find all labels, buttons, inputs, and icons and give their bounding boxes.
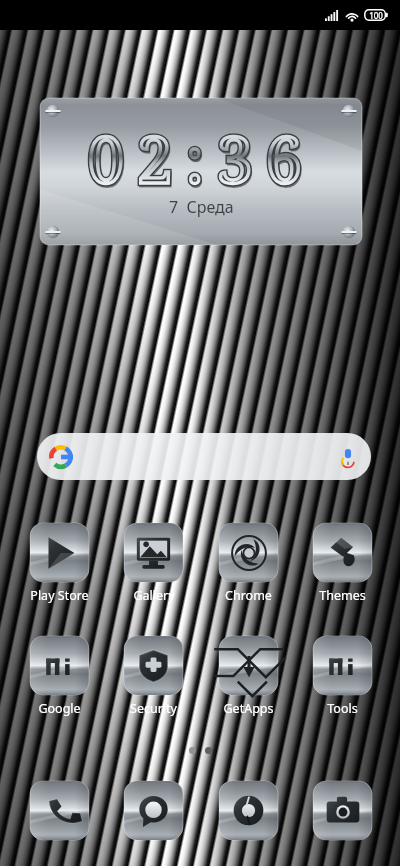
button[interactable]: Search: [37, 433, 371, 480]
button[interactable]: Messages: [124, 781, 183, 840]
staticText: 02:36: [88, 115, 315, 202]
staticText: Google: [38, 700, 81, 717]
staticText: 7 Среда: [169, 196, 234, 218]
button[interactable]: Play Store: [14, 523, 105, 604]
button[interactable]: Gallery: [108, 523, 199, 604]
staticText: Chrome: [225, 587, 272, 604]
button[interactable]: Tools: [297, 636, 388, 717]
staticText: 02:36: [89, 117, 316, 204]
button[interactable]: Chrome: [203, 523, 294, 604]
button[interactable]: Themes: [297, 523, 388, 604]
button[interactable]: Google: [14, 636, 105, 717]
staticText: Play Store: [30, 587, 89, 604]
staticText: 02:36: [88, 115, 315, 202]
staticText: 100: [369, 10, 383, 21]
staticText: GetApps: [223, 700, 274, 717]
staticText: Gallery: [133, 587, 175, 604]
button[interactable]: Browser: [219, 781, 278, 840]
button[interactable]: Camera: [313, 781, 372, 840]
staticText: Tools: [327, 700, 358, 717]
button[interactable]: Phone: [30, 781, 89, 840]
button[interactable]: 02:36: [40, 98, 362, 245]
staticText: Themes: [319, 587, 366, 604]
button[interactable]: GetApps: [203, 636, 294, 717]
button[interactable]: Security: [108, 636, 199, 717]
staticText: Security: [130, 700, 177, 717]
